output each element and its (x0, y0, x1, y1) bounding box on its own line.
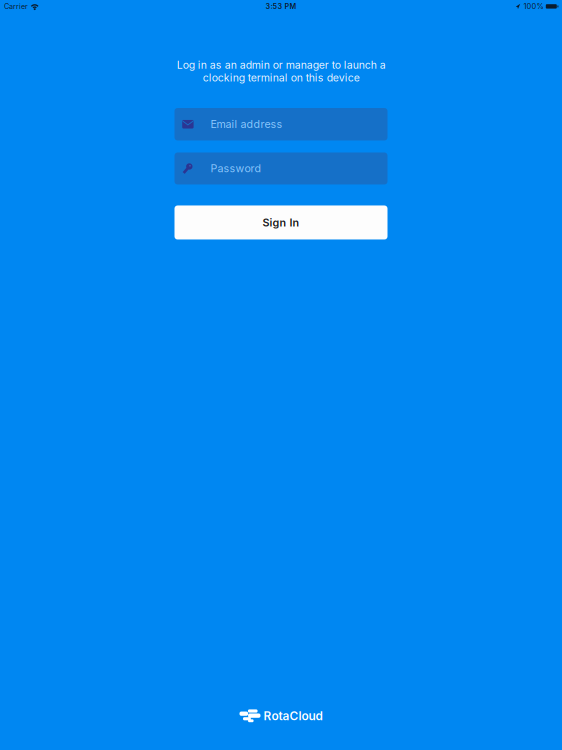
staticText: Email address (211, 118, 283, 131)
staticText: 3:53 PM (265, 2, 296, 11)
button[interactable]: Sign In (174, 205, 387, 239)
staticText: Sign In (262, 216, 299, 229)
button[interactable]: Email address (174, 108, 387, 140)
staticText: Carrier (4, 2, 28, 11)
staticText: RotaCloud (263, 709, 322, 723)
staticText: 100% (523, 2, 543, 11)
staticText: Log in as an admin or manager to launch … (176, 58, 385, 84)
button[interactable]: Password (174, 152, 387, 184)
staticText: Password (211, 162, 262, 175)
